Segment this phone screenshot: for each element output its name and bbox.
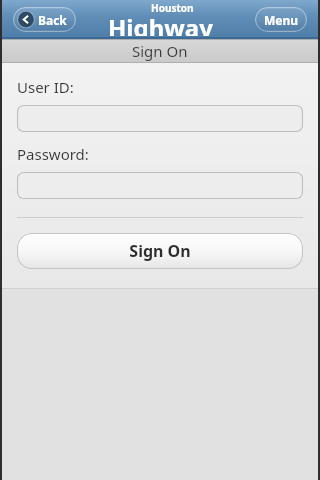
staticText: Password: xyxy=(17,144,89,164)
button[interactable]: Sign On xyxy=(17,233,303,269)
button[interactable]: Menu xyxy=(255,7,307,32)
staticText: Highway xyxy=(108,11,213,36)
staticText: Back xyxy=(38,12,67,28)
staticText: Sign On xyxy=(129,240,191,262)
staticText: Houston xyxy=(151,1,194,15)
button[interactable]: Back xyxy=(13,7,76,32)
staticText: Menu xyxy=(264,12,299,28)
button[interactable] xyxy=(17,105,303,132)
staticText: Sign On xyxy=(132,41,188,61)
staticText: User ID: xyxy=(17,77,74,97)
button[interactable] xyxy=(17,172,303,199)
